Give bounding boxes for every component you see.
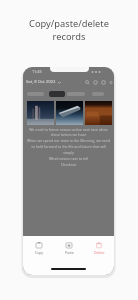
- staticText: We need to freeze season active next rac…: [25, 127, 112, 167]
- staticText: 11:45: [32, 69, 42, 74]
- button[interactable]: Calendar: [101, 80, 106, 85]
- button[interactable]: More: [109, 80, 113, 85]
- button[interactable]: Copy: [23, 236, 54, 261]
- staticText: Delete: [94, 250, 105, 255]
- staticText: Paste: [65, 250, 74, 255]
- staticText: Copy: [35, 250, 43, 255]
- button[interactable]: Share: [93, 80, 98, 85]
- staticText: Copy/paste/delete records: [29, 17, 109, 42]
- button[interactable]: Paste: [54, 236, 84, 261]
- staticText: Sat, 8 Oct 2022: [26, 79, 56, 85]
- button[interactable]: Search: [85, 80, 90, 85]
- button[interactable]: Delete: [84, 236, 114, 261]
